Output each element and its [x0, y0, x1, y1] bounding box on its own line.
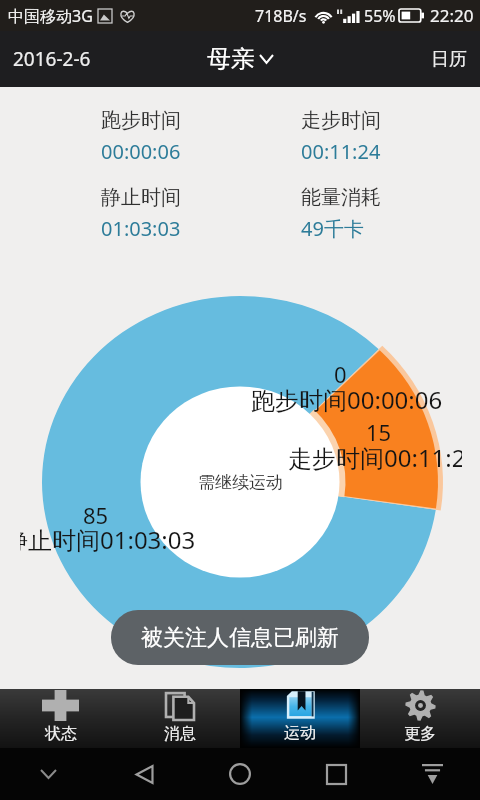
staticText: 走步时间00:11:24	[288, 441, 462, 474]
staticText: 静止时间	[101, 185, 181, 210]
staticText: 跑步时间	[101, 108, 181, 133]
staticText: 22:20	[430, 4, 474, 27]
staticText: 00:00:06	[101, 138, 181, 165]
staticText: 母亲	[207, 44, 255, 74]
button[interactable]: 日历	[417, 38, 480, 81]
staticText: 0	[334, 359, 347, 389]
staticText: 走步时间	[301, 108, 381, 133]
staticText: 00:11:24	[301, 138, 381, 165]
staticText: 静止时间01:03:03	[20, 523, 196, 556]
staticText: 85	[83, 500, 109, 530]
button[interactable]: 被关注人信息已刷新	[111, 610, 369, 665]
button[interactable]: 状态	[0, 689, 120, 748]
button[interactable]: 运动	[240, 689, 360, 748]
staticText: 15	[366, 417, 392, 447]
button[interactable]: Notifications	[384, 748, 480, 800]
staticText: 运动	[284, 723, 316, 743]
button[interactable]: Back	[96, 748, 192, 800]
staticText: 日历	[431, 48, 467, 71]
staticText: 718B/s	[255, 5, 307, 27]
staticText: 2016-2-6	[13, 46, 91, 72]
button[interactable]: Hide keyboard	[0, 748, 96, 800]
staticText: 中国移动3G	[8, 5, 93, 27]
staticText: 消息	[164, 724, 196, 744]
button[interactable]: 母亲	[197, 38, 283, 80]
staticText: 需继续运动	[198, 472, 283, 493]
staticText: 55%	[364, 5, 396, 27]
button[interactable]: Recent apps	[288, 748, 384, 800]
staticText: 被关注人信息已刷新	[141, 624, 339, 652]
staticText: 能量消耗	[301, 185, 381, 210]
button[interactable]: 2016-2-6	[0, 36, 104, 82]
staticText: 49千卡	[301, 215, 364, 242]
staticText: 跑步时间00:00:06	[251, 383, 443, 416]
button[interactable]: Home	[192, 748, 288, 800]
staticText: 更多	[404, 724, 436, 744]
staticText: 状态	[45, 724, 77, 744]
button[interactable]: 消息	[120, 689, 240, 748]
staticText: 01:03:03	[101, 215, 181, 242]
button[interactable]: 更多	[360, 689, 480, 748]
